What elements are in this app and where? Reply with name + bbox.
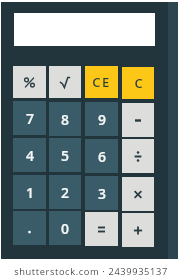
staticText: 7 [26, 109, 34, 128]
button[interactable]: 2 [49, 175, 81, 209]
staticText: 3 [98, 184, 106, 203]
staticText: 6 [98, 147, 106, 166]
staticText: 8 [61, 110, 69, 129]
button[interactable]: 4 [13, 138, 46, 172]
staticText: 0 [61, 219, 69, 238]
staticText: C [134, 74, 143, 92]
button[interactable]: Plus [122, 213, 154, 247]
button[interactable]: CE [85, 66, 118, 98]
button[interactable]: Decimal point [13, 211, 46, 245]
staticText: 9 [98, 110, 106, 129]
staticText: 1 [26, 183, 34, 202]
button[interactable]: Square root [49, 66, 81, 98]
button[interactable]: 3 [85, 176, 118, 210]
button[interactable]: Multiply [122, 177, 154, 211]
staticText: 5 [61, 146, 69, 165]
staticText: 2 [61, 183, 69, 202]
staticText: 4 [26, 146, 34, 165]
button[interactable]: 8 [49, 102, 81, 136]
button[interactable]: C [122, 67, 154, 99]
staticText: shutterstock.com · 2439935137 [14, 265, 168, 278]
button[interactable]: Percent [13, 66, 46, 98]
button[interactable]: 6 [85, 139, 118, 173]
button[interactable]: 7 [13, 101, 46, 135]
button[interactable]: Equals [85, 212, 118, 246]
button[interactable]: Minus [122, 103, 154, 137]
button[interactable]: 0 [49, 211, 81, 245]
button[interactable]: 9 [85, 102, 118, 136]
staticText: CE [92, 73, 111, 91]
button[interactable]: 5 [49, 138, 81, 172]
button[interactable]: Divide [122, 139, 154, 173]
button[interactable]: 1 [13, 175, 46, 209]
